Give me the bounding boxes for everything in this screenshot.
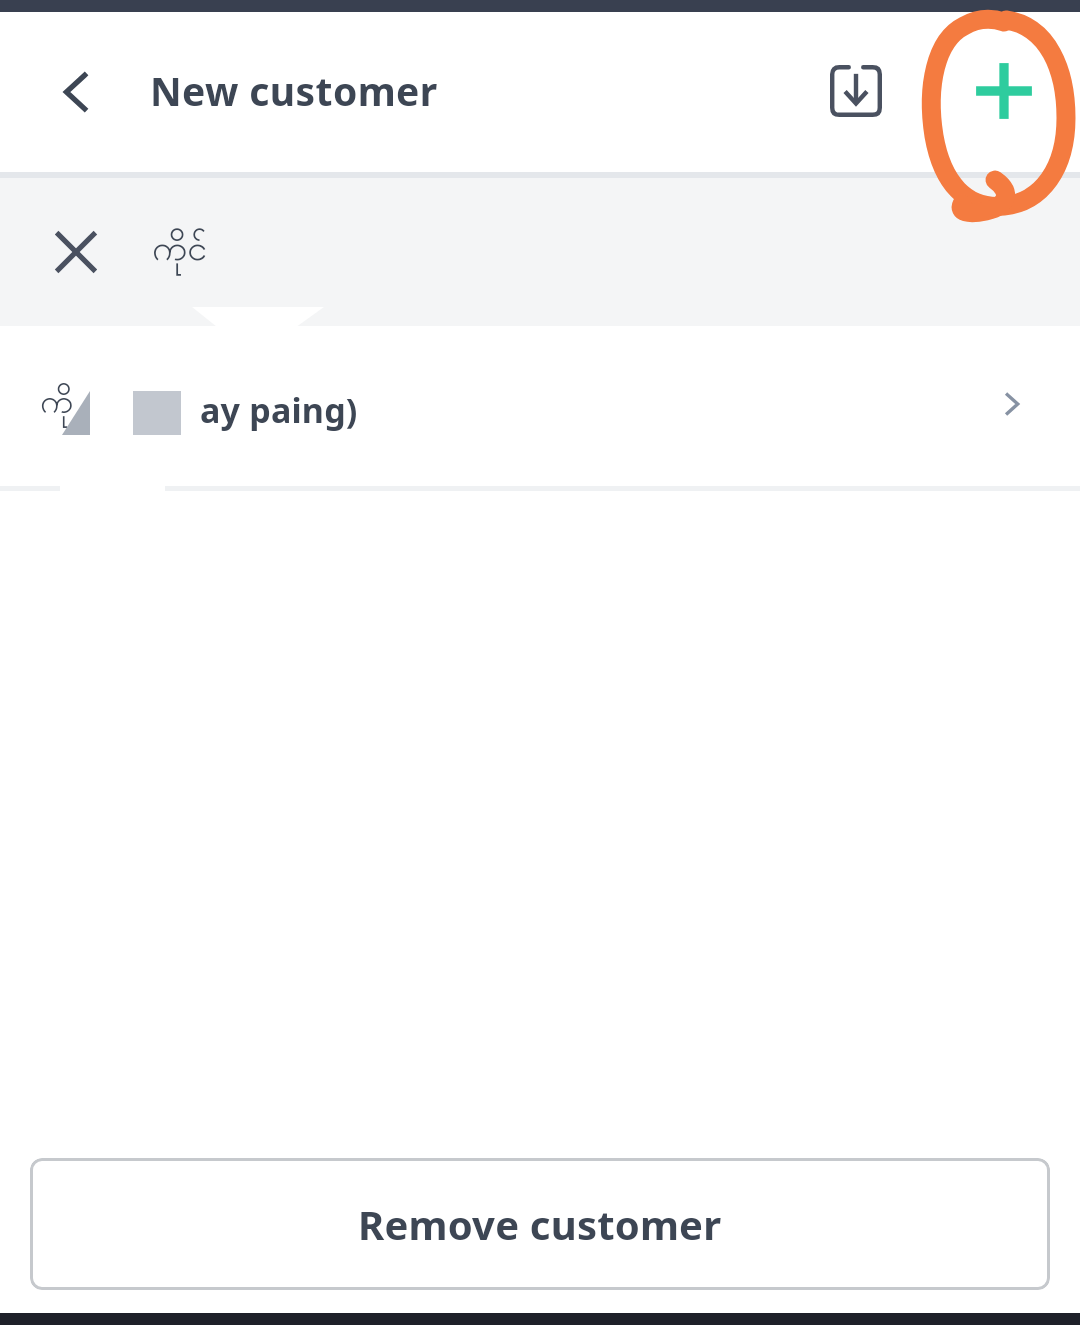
staticText: ကို — [40, 379, 74, 429]
button[interactable]: Remove customer — [30, 1158, 1050, 1290]
other: Open — [980, 372, 1044, 436]
button[interactable]: Back — [32, 48, 120, 136]
button[interactable]: Clear — [32, 208, 120, 296]
button[interactable]: ကို — [0, 326, 1080, 491]
staticText: ay paing) — [200, 387, 358, 433]
staticText: New customer — [150, 64, 438, 117]
button[interactable]: Download — [806, 41, 906, 141]
staticText: Remove customer — [358, 1197, 722, 1251]
button[interactable]: Add — [954, 41, 1054, 141]
staticText: ကိုင် — [152, 224, 208, 277]
